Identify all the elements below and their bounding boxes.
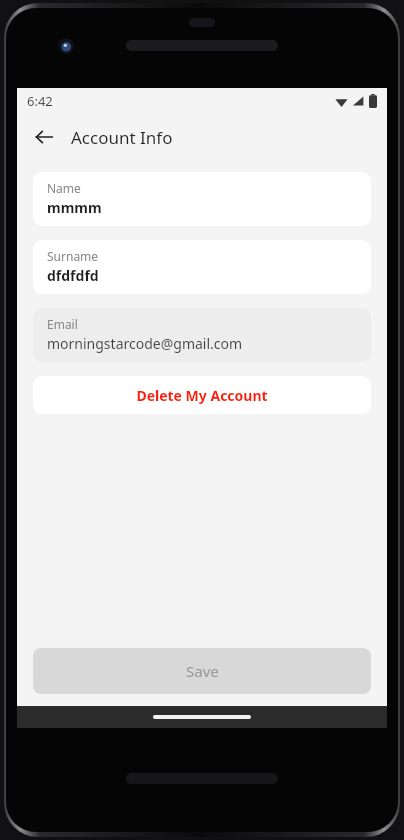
button[interactable]: Surname — [33, 240, 371, 294]
staticText: Delete My Account — [136, 386, 268, 405]
staticText: mmmm — [47, 198, 102, 217]
button[interactable]: Save — [33, 648, 371, 694]
staticText: Name — [47, 180, 81, 196]
staticText: Email — [47, 316, 78, 332]
button[interactable]: Delete My Account — [33, 376, 371, 414]
staticText: Save — [186, 661, 219, 681]
staticText: 6:42 — [27, 92, 53, 110]
staticText: Account Info — [71, 126, 173, 149]
staticText: Surname — [47, 248, 99, 264]
staticText: morningstarcode@gmail.com — [47, 334, 243, 353]
button[interactable]: Back — [27, 120, 61, 154]
staticText: dfdfdfd — [47, 266, 99, 285]
button[interactable]: Email — [33, 308, 371, 362]
button[interactable]: Name — [33, 172, 371, 226]
